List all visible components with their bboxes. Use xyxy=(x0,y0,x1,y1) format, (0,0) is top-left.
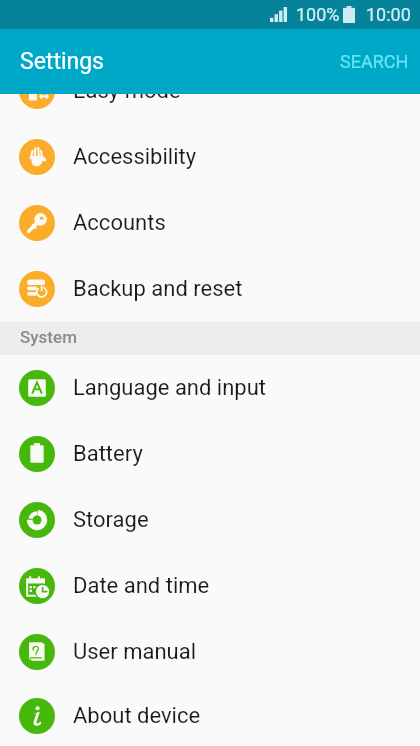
staticText: About device xyxy=(73,703,201,729)
button[interactable]: User manual xyxy=(0,619,420,685)
staticText: SEARCH xyxy=(340,51,409,72)
button[interactable]: Language and input xyxy=(0,355,420,421)
staticText: System xyxy=(20,327,77,347)
staticText: User manual xyxy=(73,639,197,665)
staticText: Accounts xyxy=(73,210,166,236)
button[interactable]: Accessibility xyxy=(0,124,420,190)
staticText: Battery xyxy=(73,441,143,467)
staticText: Easy mode xyxy=(73,78,181,104)
staticText: 100% xyxy=(296,4,340,25)
staticText: Accessibility xyxy=(73,144,197,170)
staticText: Date and time xyxy=(73,573,210,599)
button[interactable]: Storage xyxy=(0,487,420,553)
button[interactable]: About device xyxy=(0,685,420,746)
staticText: Language and input xyxy=(73,375,267,401)
button[interactable]: SEARCH xyxy=(322,37,420,86)
staticText: 10:00 xyxy=(366,4,411,25)
button[interactable]: Easy mode xyxy=(0,58,420,124)
button[interactable]: Backup and reset xyxy=(0,256,420,322)
button[interactable]: Date and time xyxy=(0,553,420,619)
staticText: Settings xyxy=(20,48,104,75)
staticText: Storage xyxy=(73,507,149,533)
staticText: Backup and reset xyxy=(73,276,243,302)
button[interactable]: Accounts xyxy=(0,190,420,256)
button[interactable]: Battery xyxy=(0,421,420,487)
